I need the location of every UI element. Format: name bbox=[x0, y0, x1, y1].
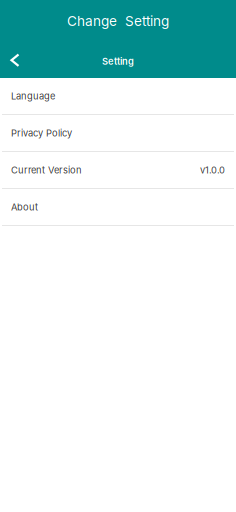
button[interactable]: About bbox=[0, 189, 236, 226]
staticText: Language bbox=[11, 90, 55, 102]
staticText: Setting bbox=[102, 56, 134, 67]
button[interactable]: Back bbox=[0, 42, 30, 76]
button[interactable]: Privacy Policy bbox=[0, 115, 236, 152]
staticText: v1.0.0 bbox=[200, 164, 225, 176]
staticText: About bbox=[11, 201, 38, 213]
button[interactable]: Current Version bbox=[0, 152, 236, 189]
button[interactable]: Language bbox=[0, 78, 236, 115]
staticText: Privacy Policy bbox=[11, 127, 72, 139]
staticText: Current Version bbox=[11, 164, 82, 176]
staticText: Change Setting bbox=[67, 13, 169, 29]
